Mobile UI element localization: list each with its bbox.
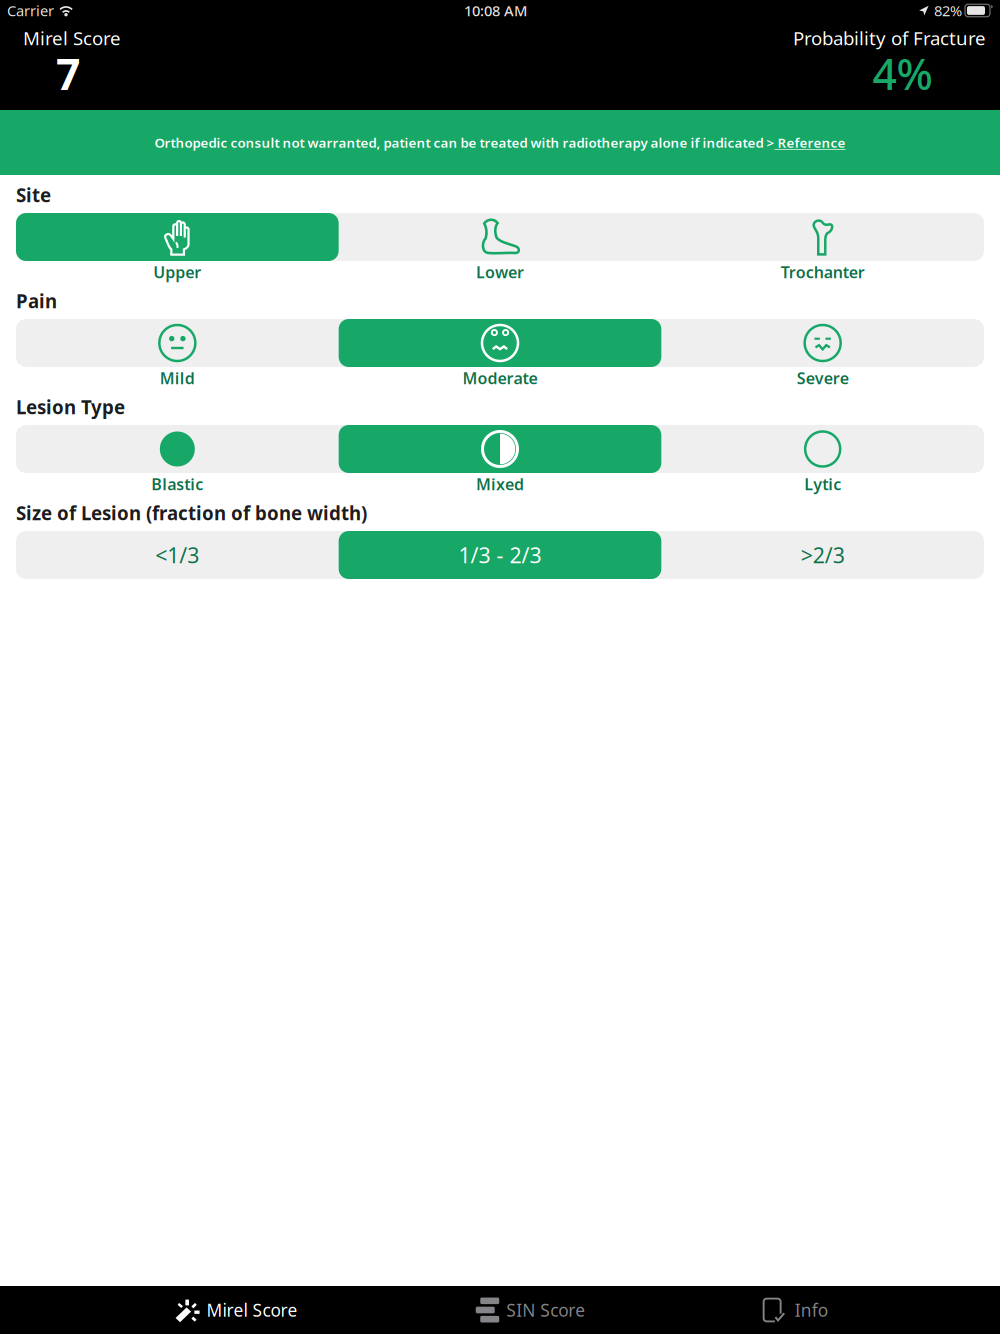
staticText: Probability of Fracture xyxy=(793,26,986,50)
button[interactable]: 1/3 - 2/3 xyxy=(339,531,661,579)
staticText: Severe xyxy=(797,367,849,389)
staticText: <1/3 xyxy=(155,541,199,569)
staticText: Pain xyxy=(16,289,57,313)
button[interactable]: SIN Score xyxy=(470,1286,591,1334)
button[interactable] xyxy=(16,425,339,473)
button[interactable]: >2/3 xyxy=(661,531,984,579)
button[interactable]: Orthopedic consult not warranted, patien… xyxy=(0,110,1000,175)
staticText: >2/3 xyxy=(801,541,845,569)
staticText: 1/3 - 2/3 xyxy=(458,541,541,569)
staticText: 10:08 AM xyxy=(464,1,527,20)
staticText: Mirel Score xyxy=(23,26,121,50)
staticText: 82% xyxy=(934,1,962,20)
staticText: Lesion Type xyxy=(16,395,125,419)
staticText: Upper xyxy=(153,261,201,283)
staticText: Info xyxy=(795,1298,828,1321)
staticText: 7 xyxy=(56,45,80,102)
button[interactable] xyxy=(16,319,339,367)
button[interactable]: <1/3 xyxy=(16,531,339,579)
staticText: Mild xyxy=(160,367,195,389)
staticText: Reference xyxy=(774,134,845,151)
button[interactable] xyxy=(339,425,661,473)
staticText: Mixed xyxy=(476,473,524,495)
staticText: Blastic xyxy=(151,473,203,495)
staticText: SIN Score xyxy=(506,1298,585,1321)
button[interactable] xyxy=(16,213,339,261)
staticText: Size of Lesion (fraction of bone width) xyxy=(16,501,367,525)
button[interactable] xyxy=(661,425,984,473)
button[interactable] xyxy=(661,319,984,367)
button[interactable]: Mirel Score xyxy=(166,1286,303,1334)
staticText: Site xyxy=(16,183,51,207)
staticText: Lytic xyxy=(804,473,841,495)
button[interactable] xyxy=(339,213,661,261)
staticText: Lower xyxy=(476,261,524,283)
button[interactable]: Info xyxy=(758,1286,834,1334)
staticText: 4% xyxy=(872,45,932,102)
staticText: Trochanter xyxy=(781,261,865,283)
button[interactable] xyxy=(339,319,661,367)
button[interactable] xyxy=(661,213,984,261)
staticText: Mirel Score xyxy=(206,1298,297,1321)
staticText: Orthopedic consult not warranted, patien… xyxy=(154,134,774,151)
staticText: Moderate xyxy=(462,367,537,389)
staticText: Carrier xyxy=(7,1,54,20)
